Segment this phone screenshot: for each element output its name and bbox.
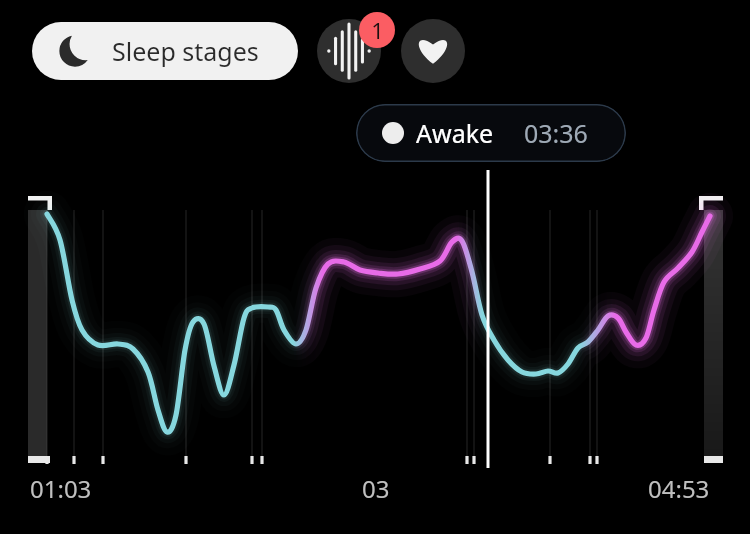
button[interactable]: Sleep audio recordings bbox=[317, 19, 381, 83]
staticText: Sleep stages bbox=[112, 34, 259, 68]
staticText: 01:03 bbox=[30, 472, 92, 505]
staticText: 1 bbox=[371, 15, 384, 45]
button[interactable]: Heart rate bbox=[401, 19, 465, 83]
staticText: 03:36 bbox=[524, 116, 588, 150]
button[interactable]: Awake bbox=[356, 104, 626, 162]
staticText: 03 bbox=[362, 472, 390, 505]
staticText: Awake bbox=[416, 116, 494, 150]
button[interactable]: Sleep stages bbox=[32, 22, 298, 80]
staticText: 04:53 bbox=[648, 472, 710, 505]
